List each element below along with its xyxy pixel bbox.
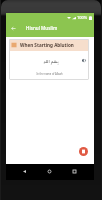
button[interactable]: Recent apps — [66, 163, 82, 179]
staticText: 100% — [77, 15, 88, 20]
button[interactable]: Play audio — [80, 57, 86, 63]
staticText: بِسْمِ اللهِ — [43, 58, 59, 64]
button[interactable]: Home — [41, 163, 57, 179]
staticText: In the name of Allaah — [36, 72, 63, 76]
button[interactable]: Navigate up — [6, 21, 20, 35]
button[interactable]: Bookmark — [79, 147, 88, 156]
staticText: Hisnul Muslim — [26, 25, 58, 31]
button[interactable]: Back — [16, 163, 32, 179]
button[interactable]: When Starting Ablution — [9, 39, 89, 80]
staticText: When Starting Ablution — [20, 42, 74, 48]
